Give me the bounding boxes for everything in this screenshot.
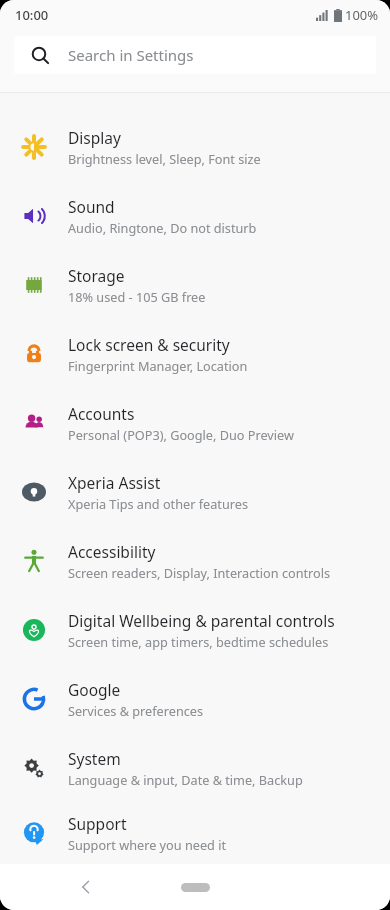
button[interactable]: Sound [0, 181, 390, 250]
staticText: Lock screen & security [68, 334, 230, 355]
staticText: Personal (POP3), Google, Duo Preview [68, 426, 294, 443]
staticText: Storage [68, 265, 125, 286]
staticText: 100% [345, 6, 379, 24]
staticText: Accounts [68, 403, 135, 424]
staticText: Fingerprint Manager, Location [68, 357, 248, 374]
staticText: 18% used - 105 GB free [68, 288, 206, 305]
staticText: 10:00 [15, 6, 49, 24]
button[interactable]: Google [0, 664, 390, 733]
staticText: Audio, Ringtone, Do not disturb [68, 219, 257, 236]
button[interactable]: System [0, 733, 390, 802]
staticText: Xperia Assist [68, 472, 161, 493]
staticText: Support where you need it [68, 836, 227, 853]
staticText: Brightness level, Sleep, Font size [68, 150, 261, 167]
button[interactable]: Accounts [0, 388, 390, 457]
staticText: Xperia Tips and other features [68, 495, 248, 512]
button[interactable]: Xperia Assist [0, 457, 390, 526]
button[interactable]: Display [0, 112, 390, 181]
button[interactable]: Back [68, 869, 104, 905]
button[interactable]: Storage [0, 250, 390, 319]
staticText: Accessibility [68, 541, 156, 562]
staticText: Language & input, Date & time, Backup [68, 771, 303, 788]
button[interactable]: Lock screen & security [0, 319, 390, 388]
staticText: Support [68, 813, 127, 834]
button[interactable]: Search in Settings [14, 36, 376, 74]
button[interactable]: Home [173, 876, 217, 898]
staticText: System [68, 748, 121, 769]
staticText: Services & preferences [68, 702, 204, 719]
button[interactable]: Digital Wellbeing & parental controls [0, 595, 390, 664]
staticText: Screen readers, Display, Interaction con… [68, 564, 331, 581]
staticText: Digital Wellbeing & parental controls [68, 610, 335, 631]
button[interactable]: Support [0, 802, 390, 864]
staticText: Display [68, 127, 121, 148]
staticText: Search in Settings [68, 45, 194, 65]
staticText: Google [68, 679, 121, 700]
staticText: Screen time, app timers, bedtime schedul… [68, 633, 329, 650]
button[interactable]: Accessibility [0, 526, 390, 595]
staticText: Sound [68, 196, 115, 217]
